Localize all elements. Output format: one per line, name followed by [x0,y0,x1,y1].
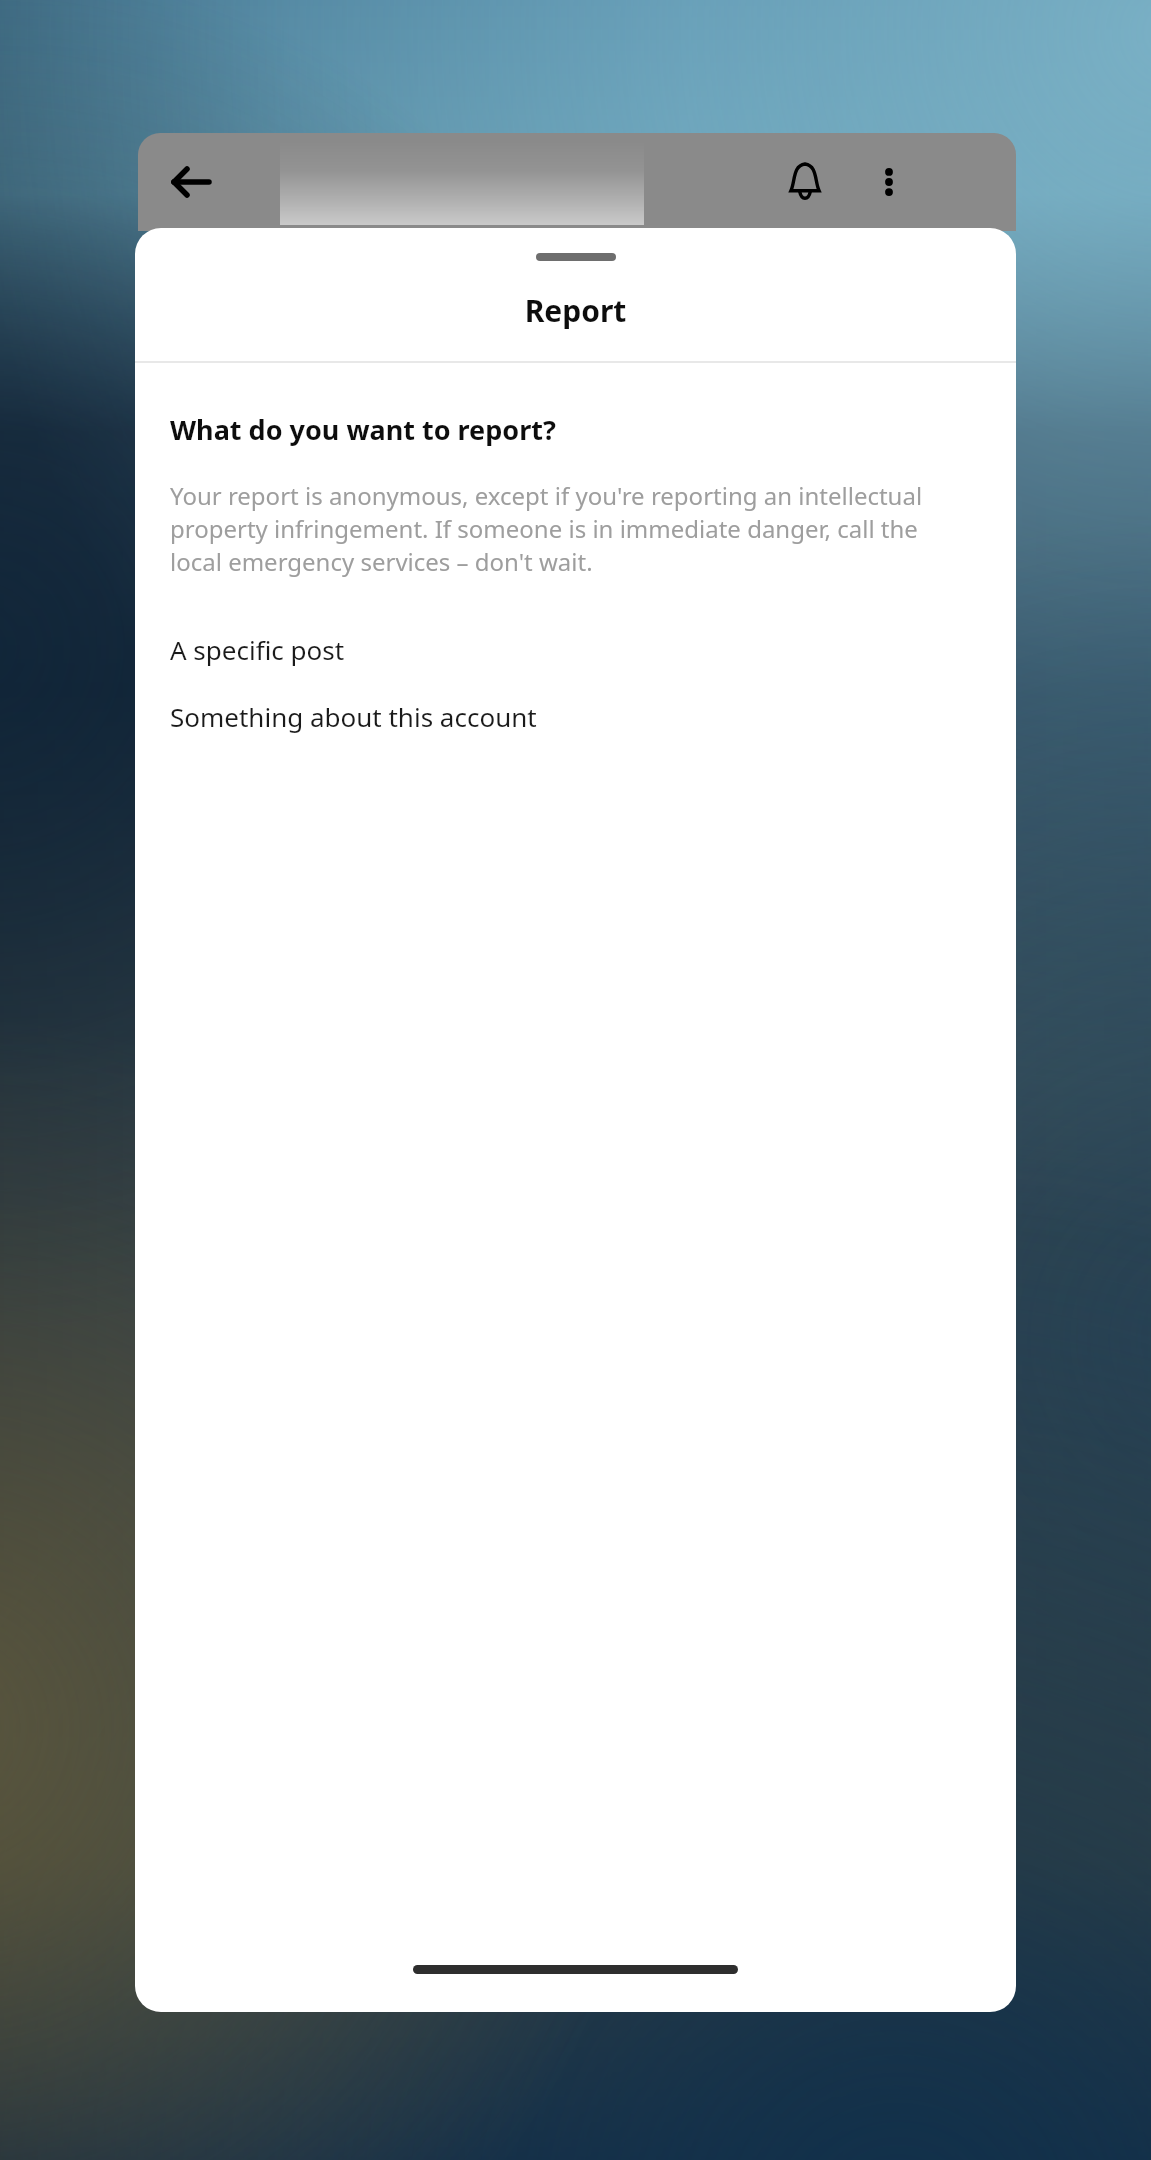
button[interactable]: A specific post [135,616,1016,683]
staticText: Something about this account [170,699,537,734]
button[interactable]: More options [854,147,924,217]
staticText: Report [135,290,1016,331]
staticText: Your report is anonymous, except if you'… [170,479,961,578]
button[interactable]: Notifications [770,147,840,217]
staticText: A specific post [170,632,345,667]
staticText: What do you want to report? [170,411,556,448]
button[interactable]: Something about this account [135,683,1016,750]
button[interactable]: Back [156,147,226,217]
